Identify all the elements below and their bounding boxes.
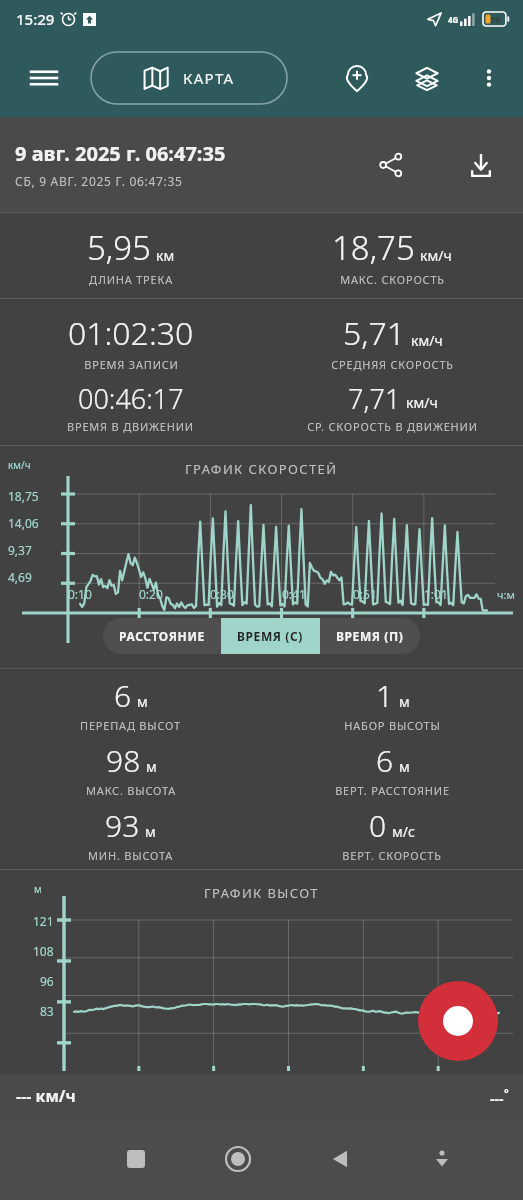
staticText: 18,75	[332, 225, 415, 270]
staticText: 6	[114, 675, 132, 716]
staticText: 83	[40, 1003, 54, 1019]
staticText: 98	[106, 740, 141, 781]
button[interactable]: More options	[465, 54, 513, 102]
button[interactable]: ВРЕМЯ (С)	[221, 618, 320, 654]
staticText: МИН. ВЫСОТА	[88, 848, 173, 863]
staticText: м	[146, 757, 157, 776]
staticText: ВЕРТ. РАССТОЯНИЕ	[335, 783, 450, 798]
staticText: 0:20	[139, 586, 163, 602]
staticText: 93	[105, 805, 140, 846]
button[interactable]: Recent apps	[85, 1118, 187, 1200]
staticText: 6	[376, 740, 394, 781]
staticText: м	[145, 822, 156, 841]
staticText: км	[156, 246, 175, 265]
staticText: 108	[33, 943, 54, 959]
button[interactable]: Back	[289, 1118, 391, 1200]
staticText: м	[399, 692, 410, 711]
button[interactable]: Home	[187, 1118, 289, 1200]
staticText: СБ, 9 АВГ. 2025 Г. 06:47:35	[15, 173, 183, 189]
staticText: СРЕДНЯЯ СКОРОСТЬ	[331, 357, 454, 372]
staticText: 1:01	[424, 586, 448, 602]
staticText: КАРТА	[183, 68, 235, 88]
staticText: 9,37	[8, 542, 32, 558]
staticText: МАКС. ВЫСОТА	[86, 783, 176, 798]
button[interactable]: Add waypoint	[333, 54, 381, 102]
staticText: м	[137, 692, 148, 711]
staticText: 4G	[448, 14, 459, 25]
staticText: м	[34, 882, 42, 896]
button[interactable]: ВРЕМЯ (П)	[320, 618, 420, 654]
staticText: 96	[40, 973, 54, 989]
staticText: 00:46:17	[78, 380, 184, 417]
staticText: 15:29	[16, 9, 55, 29]
staticText: ---	[490, 1089, 504, 1108]
staticText: МАКС. СКОРОСТЬ	[340, 272, 445, 287]
staticText: 5,95	[87, 225, 151, 270]
button[interactable]: Share	[367, 141, 415, 189]
staticText: ВРЕМЯ (С)	[237, 628, 304, 644]
staticText: м/с	[392, 822, 415, 841]
staticText: км/ч	[420, 246, 452, 265]
staticText: НАБОР ВЫСОТЫ	[344, 718, 441, 733]
staticText: км/ч	[406, 393, 438, 412]
staticText: СР. СКОРОСТЬ В ДВИЖЕНИИ	[307, 419, 478, 434]
staticText: ДЛИНА ТРЕКА	[89, 272, 173, 287]
staticText: 0:30	[210, 586, 234, 602]
button[interactable]: Menu	[22, 56, 66, 100]
staticText: ПЕРЕПАД ВЫСОТ	[80, 718, 181, 733]
staticText: 19	[490, 13, 501, 25]
staticText: ВРЕМЯ ЗАПИСИ	[84, 357, 179, 372]
staticText: 01:02:30	[68, 311, 194, 355]
staticText: 18,75	[8, 488, 39, 504]
button[interactable]: Record	[418, 981, 498, 1061]
staticText: ВРЕМЯ (П)	[336, 628, 404, 644]
staticText: ГРАФИК ВЫСОТ	[204, 884, 319, 902]
button[interactable]: КАРТА	[91, 52, 287, 104]
staticText: ГРАФИК СКОРОСТЕЙ	[185, 460, 338, 478]
staticText: ВРЕМЯ В ДВИЖЕНИИ	[67, 419, 194, 434]
staticText: 121	[33, 913, 54, 929]
staticText: 5,71	[343, 311, 406, 355]
staticText: 0:10	[68, 586, 92, 602]
staticText: 9 авг. 2025 г. 06:47:35	[15, 140, 226, 167]
staticText: 1	[376, 675, 394, 716]
staticText: 0:41	[282, 586, 306, 602]
staticText: °	[504, 1085, 509, 1100]
button[interactable]: Layers	[403, 54, 451, 102]
staticText: 14,06	[8, 515, 39, 531]
staticText: РАССТОЯНИЕ	[119, 628, 205, 644]
button[interactable]: Download	[457, 141, 505, 189]
staticText: км/ч	[411, 331, 443, 350]
staticText: 7,71	[348, 380, 401, 417]
staticText: 4,69	[8, 569, 32, 585]
staticText: --- км/ч	[16, 1085, 76, 1107]
button[interactable]: Hide navigation bar	[391, 1118, 493, 1200]
staticText: ВЕРТ. СКОРОСТЬ	[342, 848, 442, 863]
staticText: 0:51	[353, 586, 377, 602]
staticText: км/ч	[8, 458, 31, 472]
staticText: 0	[369, 805, 387, 846]
button[interactable]: РАССТОЯНИЕ	[103, 618, 221, 654]
staticText: м	[399, 757, 410, 776]
staticText: ч:м	[497, 587, 515, 602]
